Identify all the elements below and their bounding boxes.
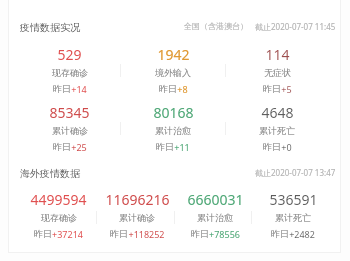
staticText: 1942 [157, 45, 190, 64]
button[interactable]: 疫情数据实况 [8, 8, 341, 42]
staticText: 昨日 [271, 228, 289, 239]
staticText: 4648 [261, 103, 294, 122]
staticText: 累计治愈 [155, 125, 191, 136]
button[interactable]: 529 [18, 45, 121, 93]
staticText: 80168 [153, 103, 194, 122]
staticText: 昨日 [263, 141, 281, 151]
button[interactable]: 6660031 [176, 190, 254, 240]
button[interactable]: 85345 [18, 103, 121, 151]
staticText: 疫情数据实况 [20, 21, 80, 34]
button[interactable]: 1942 [121, 45, 225, 93]
staticText: 海外疫情数据 [20, 167, 80, 180]
staticText: 昨日 [159, 83, 177, 93]
staticText: 现存确诊 [52, 67, 88, 78]
staticText: 累计确诊 [119, 212, 155, 223]
staticText: 境外输入 [155, 67, 191, 78]
staticText: 累计确诊 [52, 125, 88, 136]
staticText: 4499594 [30, 190, 87, 209]
button[interactable]: 80168 [121, 103, 225, 151]
staticText: 截止2020-07-07 13:47 [255, 167, 336, 178]
staticText: 累计死亡 [259, 125, 295, 136]
staticText: +11 [174, 141, 190, 151]
staticText: 85345 [49, 103, 90, 122]
staticText: +25 [71, 141, 87, 151]
staticText: 11696216 [105, 190, 170, 209]
staticText: +8 [177, 83, 188, 93]
staticText: 6660031 [187, 190, 244, 209]
staticText: +118252 [128, 228, 165, 240]
staticText: 昨日 [53, 83, 71, 93]
staticText: 529 [57, 45, 82, 64]
button[interactable]: 536591 [254, 190, 332, 240]
staticText: 现存确诊 [41, 212, 77, 223]
staticText: 无症状 [264, 67, 291, 78]
staticText: 昨日 [156, 141, 174, 151]
staticText: 昨日 [34, 228, 52, 239]
staticText: 昨日 [191, 228, 209, 239]
staticText: 114 [265, 45, 290, 64]
staticText: 截止2020-07-07 11:45 [255, 21, 336, 32]
staticText: +5 [281, 83, 292, 93]
button[interactable]: 4499594 [19, 190, 98, 240]
button[interactable]: 海外疫情数据 [8, 155, 341, 189]
staticText: 全国（含港澳台） [184, 21, 248, 31]
staticText: +37214 [52, 228, 83, 240]
staticText: 昨日 [263, 83, 281, 93]
button[interactable]: 4648 [225, 103, 329, 151]
staticText: 536591 [269, 190, 318, 209]
staticText: 累计死亡 [275, 212, 311, 223]
staticText: +2482 [289, 228, 315, 240]
button[interactable]: 114 [225, 45, 329, 93]
staticText: 累计治愈 [197, 212, 233, 223]
staticText: 昨日 [53, 141, 71, 151]
staticText: +14 [71, 83, 87, 93]
button[interactable]: 11696216 [98, 190, 176, 240]
staticText: +0 [281, 141, 292, 151]
staticText: 昨日 [110, 228, 128, 239]
staticText: +78556 [209, 228, 240, 240]
